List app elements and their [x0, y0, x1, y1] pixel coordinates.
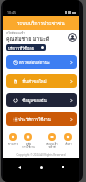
button[interactable]: ประวัติการใช้งาน — [6, 112, 77, 126]
button[interactable]: ข้อมูลของฉัน — [6, 93, 77, 107]
staticText: ข่าวสาร — [8, 142, 18, 146]
staticText: ตั้งค่า — [65, 142, 72, 146]
button[interactable]: ข่าวสาร — [4, 133, 22, 146]
button[interactable]: Profile — [68, 33, 77, 42]
staticText: สวัสดีตอนเช้า — [6, 30, 25, 35]
staticText: บริการที่ใช้บ่อย — [8, 45, 41, 51]
staticText: ติดต่อเจ้าหน้าที่ — [43, 142, 61, 150]
staticText: ประวัติการใช้งาน — [18, 116, 51, 123]
staticText: ตรวจสอบสถานะ — [19, 59, 50, 66]
button[interactable]: Back — [15, 163, 23, 171]
staticText: 10:45 — [7, 10, 16, 15]
staticText: ข้อมูลของฉัน — [22, 97, 47, 104]
button[interactable]: Recents — [59, 163, 67, 171]
staticText: คู่มือ การใช้งาน — [22, 142, 35, 150]
button[interactable]: ยื่นคำขอใหม่ — [6, 74, 77, 88]
button[interactable]: บริการที่ใช้บ่อย — [6, 44, 46, 51]
button[interactable]: ตั้งค่า — [59, 133, 77, 146]
button[interactable]: ตรวจสอบสถานะ — [6, 55, 77, 69]
button[interactable]: ติดต่อเจ้าหน้าที่ — [43, 133, 61, 150]
button[interactable]: Home — [37, 163, 45, 171]
button[interactable]: คู่มือ การใช้งาน — [19, 133, 37, 150]
staticText: คุณสมชาย มานะดี — [6, 35, 50, 44]
staticText: ยื่นคำขอใหม่ — [22, 78, 47, 85]
staticText: Copyright © 2024 All Rights Reserved — [3, 153, 79, 157]
staticText: ระบบบริการประชาชน — [17, 19, 65, 27]
